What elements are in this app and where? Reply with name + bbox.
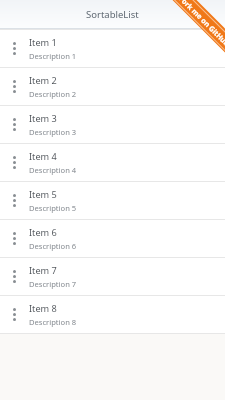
staticText: Item 1 <box>29 36 57 49</box>
button[interactable]: Reorder Item 6 <box>0 219 225 257</box>
other: Fork me on GitHub <box>143 0 225 82</box>
button[interactable]: Reorder Item 1 <box>0 29 29 67</box>
staticText: Item 7 <box>29 264 57 277</box>
staticText: Description 1 <box>29 51 77 61</box>
button[interactable]: Reorder Item 5 <box>0 181 29 219</box>
button[interactable]: Reorder Item 5 <box>0 181 225 219</box>
staticText: Item 5 <box>29 188 57 201</box>
button[interactable]: SortableList <box>0 0 225 29</box>
button[interactable]: Reorder Item 7 <box>0 257 225 295</box>
button[interactable]: Reorder Item 7 <box>0 257 29 295</box>
button[interactable]: Reorder Item 8 <box>0 295 225 333</box>
button[interactable]: Fork me on GitHub <box>170 0 225 55</box>
staticText: Item 6 <box>29 226 57 239</box>
staticText: Item 4 <box>29 150 57 163</box>
staticText: Description 5 <box>29 203 77 213</box>
staticText: Description 7 <box>29 279 77 289</box>
button[interactable]: Reorder Item 2 <box>0 67 29 105</box>
button[interactable]: Reorder Item 6 <box>0 219 29 257</box>
button[interactable]: Reorder Item 4 <box>0 143 225 181</box>
staticText: Description 2 <box>29 89 77 99</box>
staticText: Description 3 <box>29 127 77 137</box>
button[interactable]: Reorder Item 2 <box>0 67 225 105</box>
staticText: Description 4 <box>29 165 77 175</box>
button[interactable]: Reorder Item 1 <box>0 29 225 67</box>
staticText: Description 6 <box>29 241 77 251</box>
staticText: Fork me on GitHub <box>177 0 225 48</box>
staticText: Item 2 <box>29 74 57 87</box>
button[interactable]: Reorder Item 4 <box>0 143 29 181</box>
staticText: SortableList <box>86 8 139 21</box>
button[interactable]: Reorder Item 3 <box>0 105 225 143</box>
button[interactable]: Reorder Item 3 <box>0 105 29 143</box>
staticText: Item 8 <box>29 302 57 315</box>
button[interactable]: Reorder Item 8 <box>0 295 29 333</box>
staticText: Item 3 <box>29 112 57 125</box>
staticText: Description 8 <box>29 317 77 327</box>
